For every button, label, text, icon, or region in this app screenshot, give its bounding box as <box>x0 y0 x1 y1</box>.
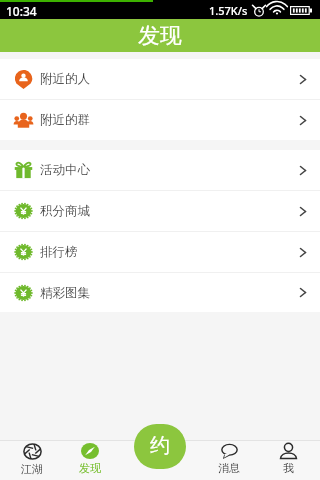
staticText: 江湖 <box>21 462 43 476</box>
button[interactable]: 约 compose <box>134 424 186 469</box>
button[interactable]: 发现 <box>67 440 113 480</box>
button[interactable]: 附近的群 <box>0 100 320 140</box>
staticText: 积分商城 <box>40 203 90 219</box>
staticText: 发现 <box>138 22 182 50</box>
button[interactable]: 排行榜 <box>0 232 320 272</box>
staticText: 附近的人 <box>40 71 90 87</box>
button[interactable]: 活动中心 <box>0 150 320 190</box>
staticText: 消息 <box>218 461 240 475</box>
button[interactable]: 江湖 <box>9 440 55 480</box>
button[interactable]: 附近的人 <box>0 59 320 99</box>
staticText: 发现 <box>79 461 101 475</box>
staticText: 1.57K/s <box>209 3 248 18</box>
staticText: 精彩图集 <box>40 285 90 301</box>
button[interactable]: 积分商城 <box>0 191 320 231</box>
staticText: 约 <box>150 433 170 458</box>
staticText: 排行榜 <box>40 244 78 260</box>
button[interactable]: 消息 <box>206 440 252 480</box>
staticText: 10:34 <box>6 3 37 19</box>
staticText: 附近的群 <box>40 112 90 128</box>
staticText: 我 <box>283 461 294 475</box>
staticText: 活动中心 <box>40 162 90 178</box>
button[interactable]: 精彩图集 <box>0 273 320 312</box>
button[interactable]: 我 <box>265 440 311 480</box>
